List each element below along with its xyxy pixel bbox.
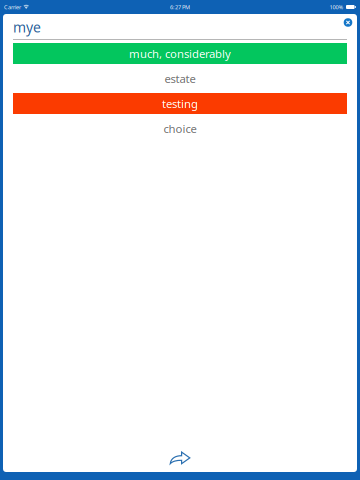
button[interactable]: Share [162,444,198,471]
staticText: testing [162,96,198,111]
staticText: Carrier [4,3,21,11]
staticText: 100% [329,3,343,11]
button[interactable]: estate [13,66,347,91]
staticText: mye [13,17,41,37]
staticText: estate [164,71,195,86]
staticText: much, considerably [129,46,231,61]
staticText: choice [163,121,196,136]
button[interactable]: choice [13,116,347,141]
button[interactable]: Clear text [342,17,353,28]
button[interactable]: much, considerably [13,41,347,66]
staticText: 6:27 PM [170,3,190,11]
button[interactable]: testing [13,91,347,116]
